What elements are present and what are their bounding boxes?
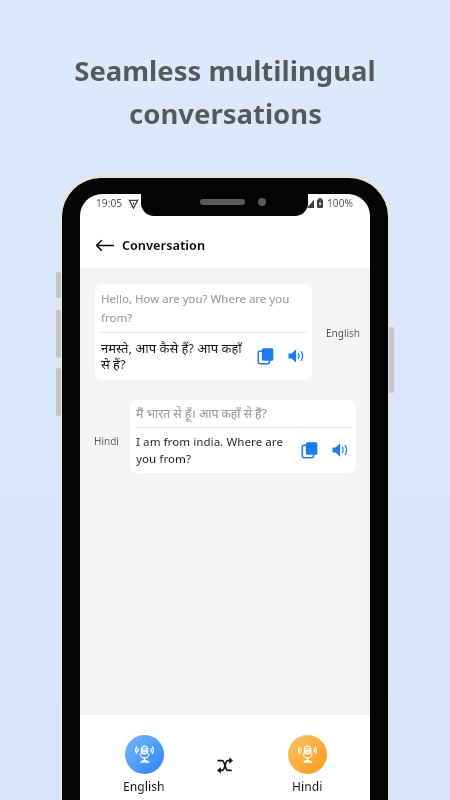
button[interactable]: Hello, How are you? Where are you from? [95, 284, 312, 380]
button[interactable]: Copy [255, 345, 277, 367]
button[interactable]: Speak [286, 345, 308, 367]
staticText: 19:05 [96, 196, 123, 210]
staticText: I am from india. Where are you from? [136, 434, 295, 466]
staticText: नमस्ते, आप कैसे हैं? आप कहाँ से हैं? [101, 339, 251, 373]
button[interactable]: Hindi [271, 735, 343, 794]
staticText: Hello, How are you? Where are you from? [101, 291, 302, 325]
staticText: English [123, 778, 165, 794]
button[interactable]: English [108, 735, 180, 794]
staticText: Hindi [94, 434, 119, 448]
staticText: English [326, 326, 361, 340]
button[interactable]: Speak [330, 439, 352, 461]
button[interactable]: Back [95, 236, 114, 254]
staticText: Seamless multilingual [74, 52, 376, 89]
staticText: 100% [327, 196, 353, 210]
staticText: Conversation [122, 237, 206, 254]
staticText: मैं भारत से हूँ। आप कहाँ से हैं? [136, 405, 267, 422]
button[interactable]: Copy [299, 439, 321, 461]
button[interactable]: मैं भारत से हूँ। आप कहाँ से हैं? [130, 400, 356, 473]
staticText: conversations [129, 95, 322, 132]
staticText: Hindi [292, 778, 323, 794]
button[interactable]: Swap languages [212, 752, 238, 778]
